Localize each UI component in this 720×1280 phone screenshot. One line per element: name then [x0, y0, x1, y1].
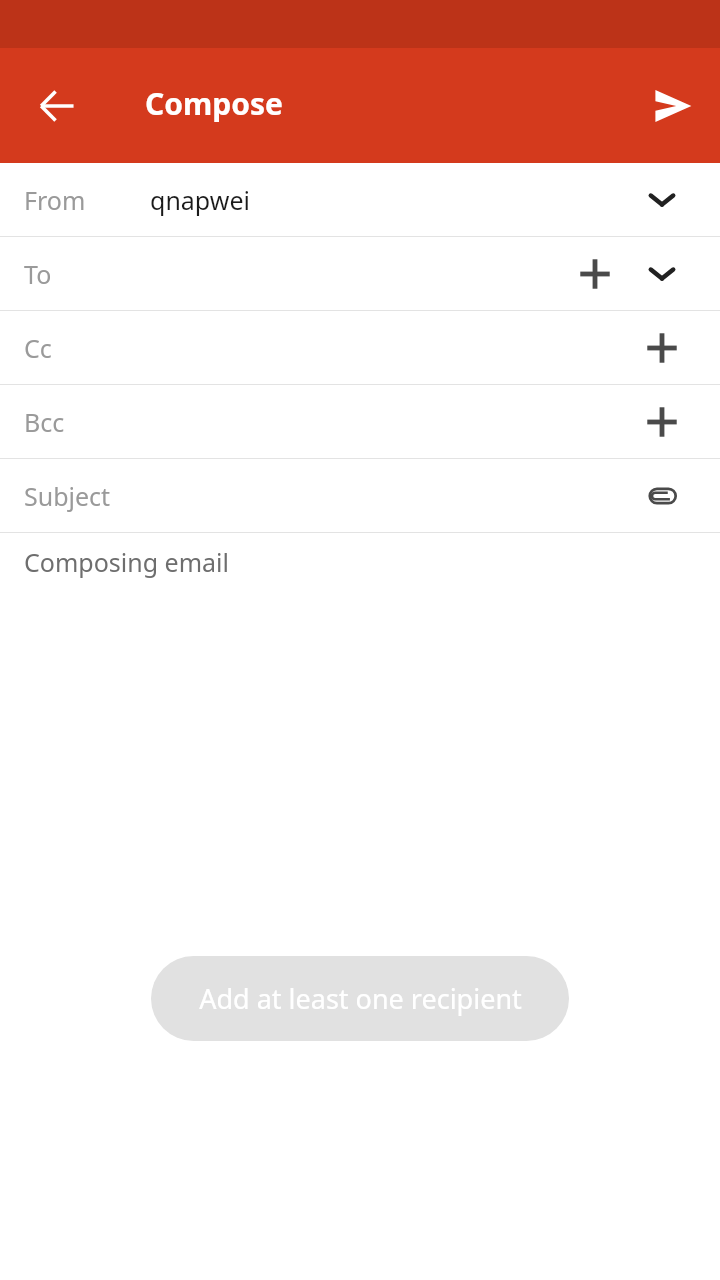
button[interactable]: Add recipient	[559, 238, 631, 310]
button[interactable]: From	[0, 163, 720, 236]
button[interactable]: To	[0, 237, 720, 310]
button[interactable]: Attach file	[626, 460, 698, 532]
button[interactable]: Back	[20, 69, 94, 143]
staticText: From	[24, 183, 86, 217]
button[interactable]: Expand from	[626, 164, 698, 236]
button[interactable]: Send	[636, 69, 710, 143]
button[interactable]: Composing email	[0, 533, 720, 613]
button[interactable]: Add at least one recipient	[151, 956, 569, 1041]
button[interactable]: Cc	[0, 311, 720, 384]
staticText: Composing email	[24, 545, 229, 579]
staticText: Cc	[24, 331, 52, 365]
button[interactable]: Subject	[0, 459, 720, 532]
button[interactable]: Add Cc recipient	[626, 312, 698, 384]
staticText: Bcc	[24, 405, 65, 439]
staticText: Subject	[24, 479, 111, 513]
staticText: qnapwei	[150, 183, 250, 217]
staticText: To	[24, 257, 52, 291]
staticText: Add at least one recipient	[199, 980, 522, 1017]
staticText: Compose	[145, 83, 283, 124]
button[interactable]: Bcc	[0, 385, 720, 458]
button[interactable]: Show Cc and Bcc	[626, 238, 698, 310]
button[interactable]: Add Bcc recipient	[626, 386, 698, 458]
